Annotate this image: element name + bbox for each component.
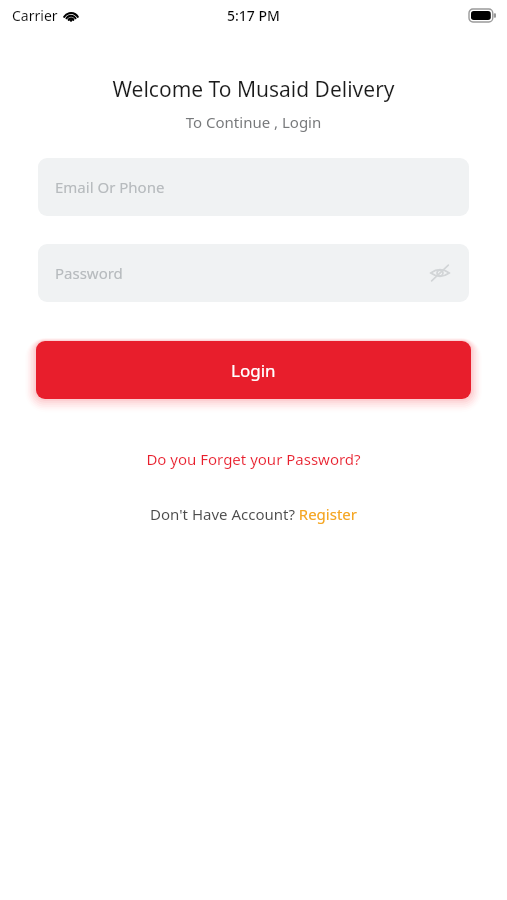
staticText: Carrier — [12, 6, 58, 25]
button[interactable]: Email Or Phone — [38, 158, 469, 216]
staticText: Login — [231, 359, 276, 382]
staticText: Welcome To Musaid Delivery — [0, 75, 507, 104]
staticText: Do you Forget your Password? — [146, 449, 361, 469]
staticText: Password — [55, 263, 123, 283]
staticText: Email Or Phone — [55, 177, 165, 197]
button[interactable]: Do you Forget your Password? — [0, 449, 507, 469]
button[interactable]: Password — [38, 244, 469, 302]
staticText: 5:17 PM — [227, 6, 280, 25]
staticText: Don't Have Account? Register — [150, 504, 357, 524]
staticText: To Continue , Login — [0, 112, 507, 132]
button[interactable]: Don't Have Account? Register — [0, 504, 507, 524]
button[interactable]: Login — [36, 341, 471, 399]
button[interactable]: Show password — [425, 258, 455, 288]
